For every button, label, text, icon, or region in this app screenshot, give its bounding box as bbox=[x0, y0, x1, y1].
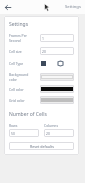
staticText: Settings bbox=[9, 21, 29, 28]
button[interactable]: Square cell type bbox=[40, 60, 47, 67]
staticText: Reset defaults bbox=[30, 144, 54, 149]
button[interactable]: Back bbox=[2, 2, 13, 13]
staticText: 1 bbox=[42, 36, 44, 41]
staticText: 20 bbox=[46, 131, 50, 136]
staticText: Number of Cells bbox=[9, 111, 47, 118]
button[interactable]: Grid color bbox=[40, 96, 74, 104]
staticText: Columns bbox=[44, 123, 59, 128]
button[interactable]: 20 bbox=[40, 47, 74, 55]
other: Pointer bbox=[42, 3, 51, 12]
button[interactable]: 50 bbox=[9, 129, 39, 137]
button[interactable]: Cell color bbox=[40, 85, 74, 93]
button[interactable]: Reset defaults bbox=[9, 142, 74, 150]
staticText: Grid color bbox=[9, 98, 25, 103]
staticText: Background color bbox=[9, 72, 37, 82]
button[interactable]: Hexagon cell type bbox=[57, 60, 64, 67]
button[interactable]: 20 bbox=[44, 129, 74, 137]
staticText: Rows bbox=[9, 123, 18, 128]
staticText: 20 bbox=[42, 49, 46, 54]
staticText: 50 bbox=[11, 131, 15, 136]
button[interactable]: Background color bbox=[40, 73, 74, 81]
staticText: Settings bbox=[65, 4, 81, 10]
button[interactable]: 1 bbox=[40, 34, 74, 42]
staticText: Cell color bbox=[9, 87, 24, 92]
staticText: Cell size bbox=[9, 49, 22, 54]
staticText: Frames Per Second bbox=[9, 33, 37, 43]
button[interactable]: Settings bbox=[61, 2, 85, 12]
staticText: Cell Type bbox=[9, 61, 24, 66]
